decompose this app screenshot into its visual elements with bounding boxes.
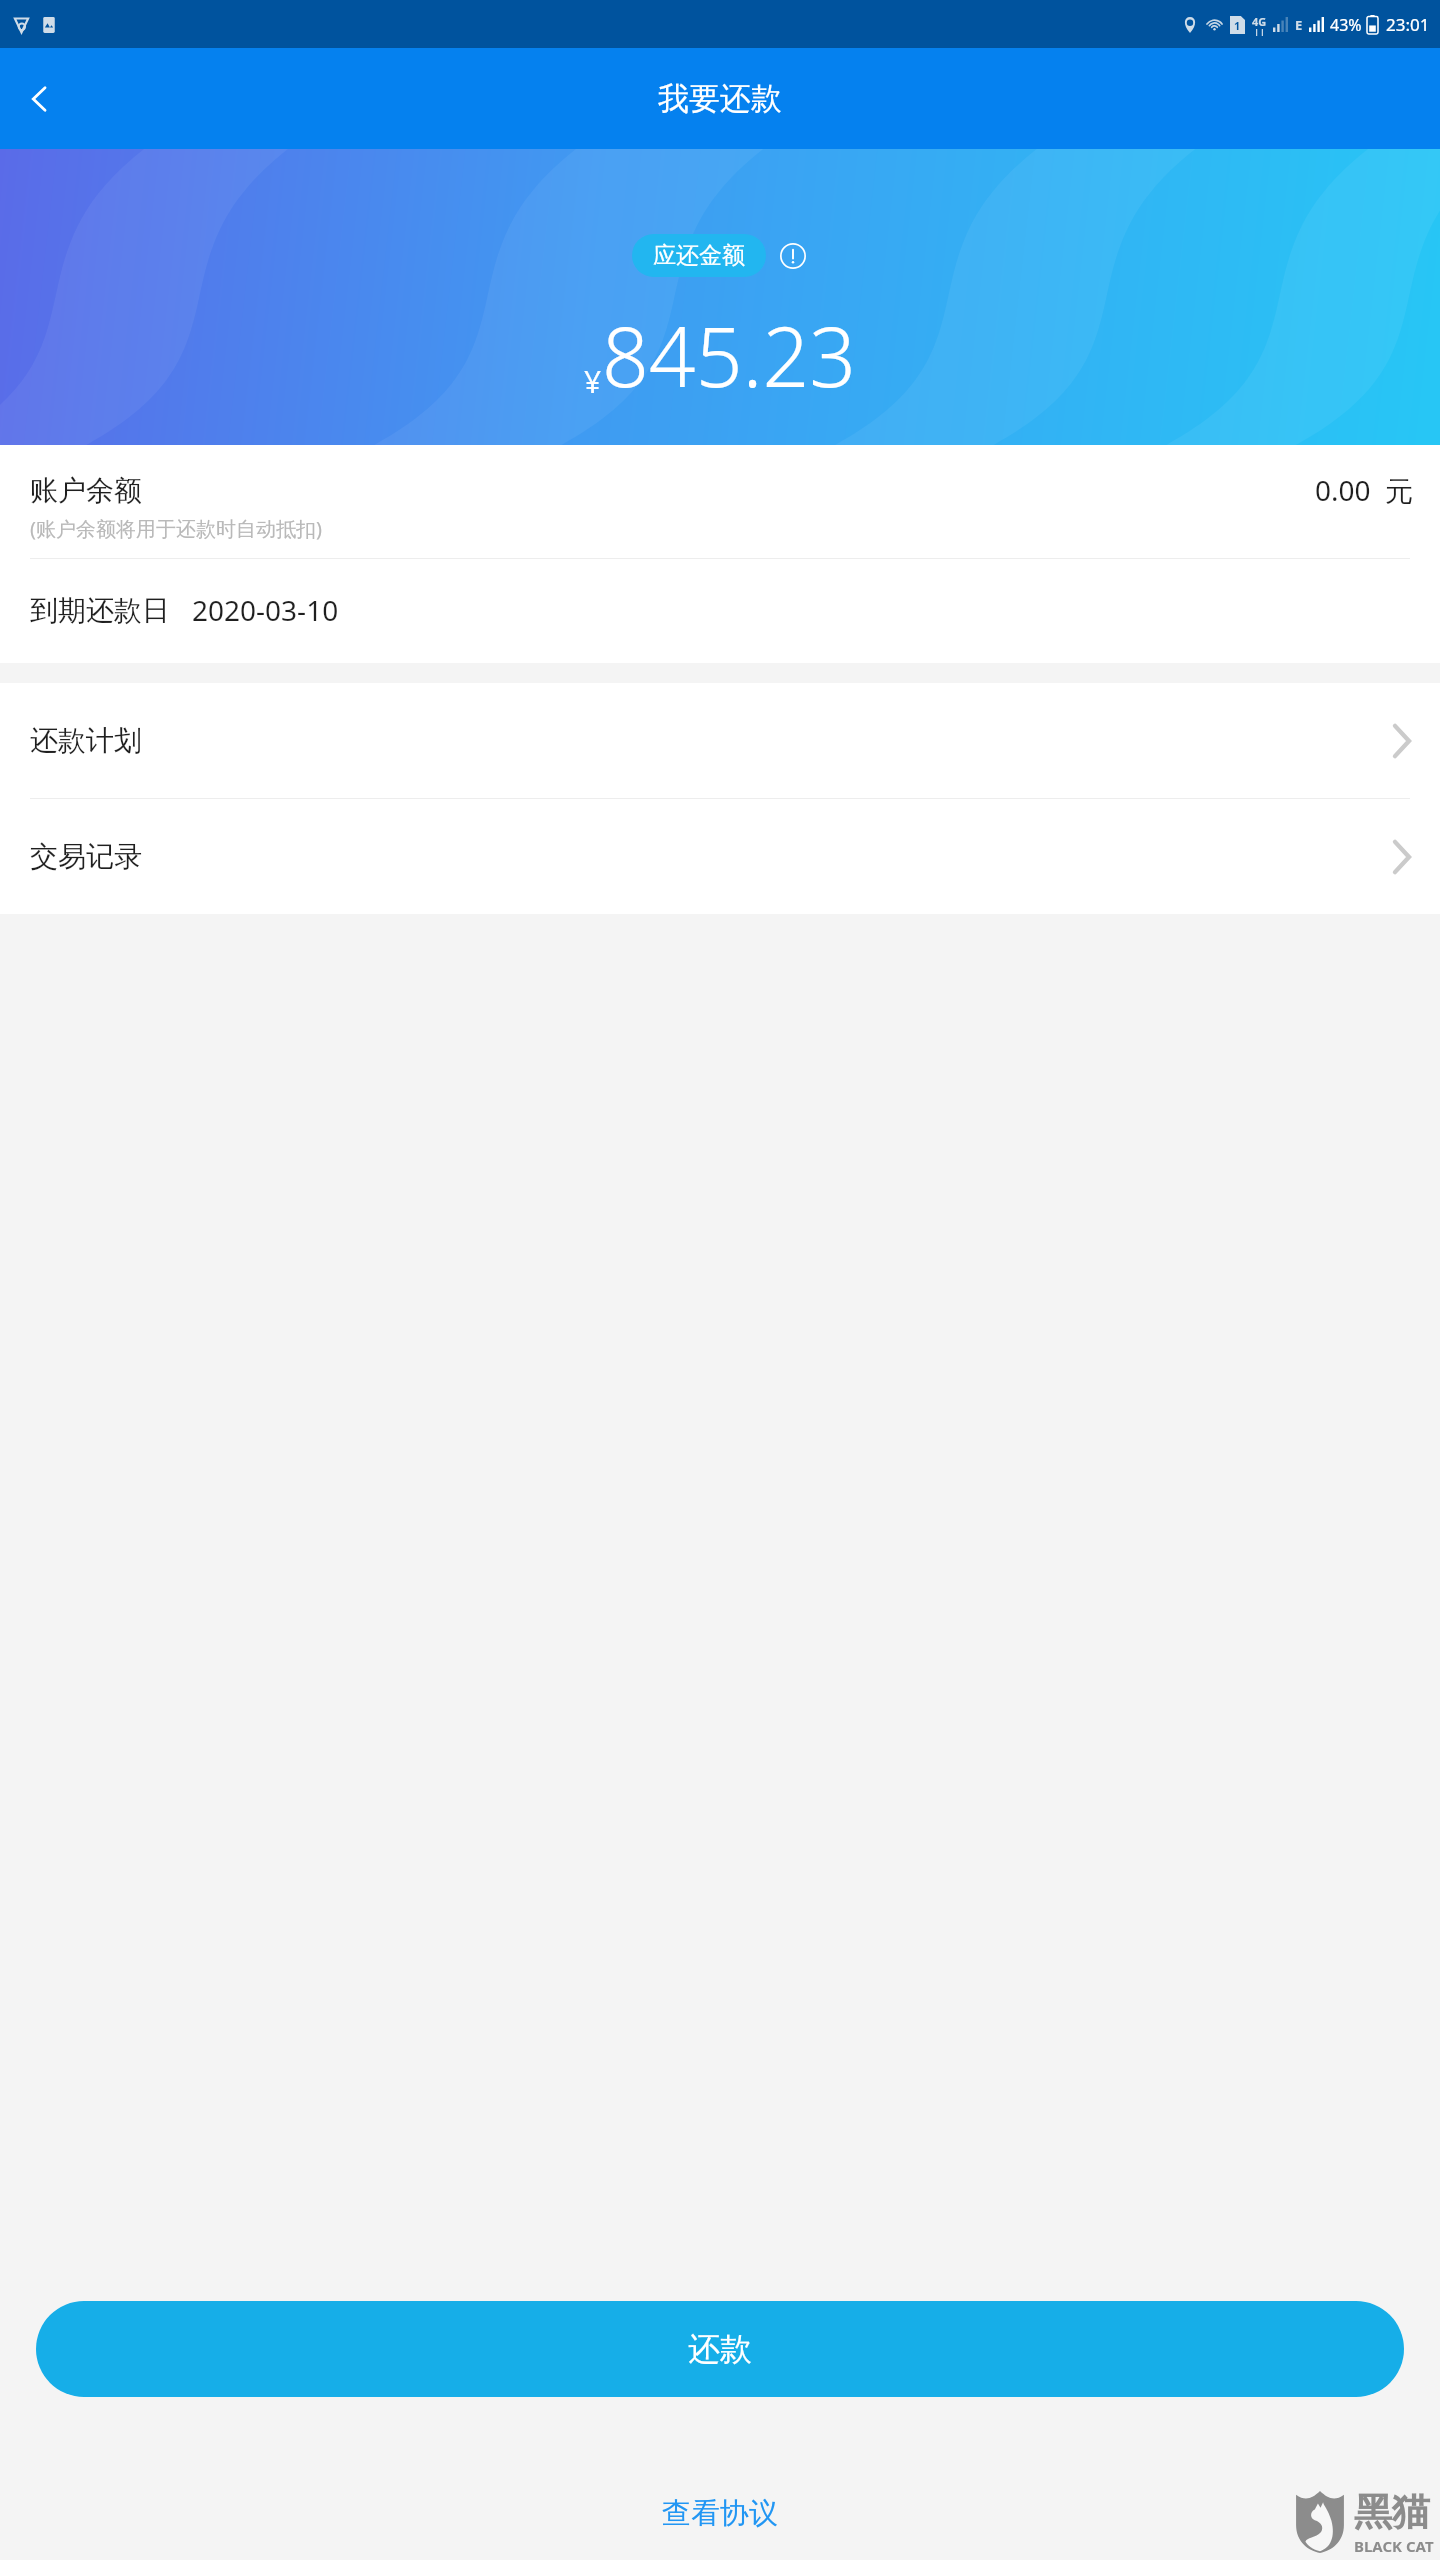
- staticText: E: [1295, 16, 1303, 34]
- staticText: 4G: [1252, 14, 1267, 29]
- staticText: 845.23: [602, 299, 857, 411]
- staticText: 0.00 元: [1315, 471, 1414, 509]
- staticText: BLACK CAT: [1354, 2536, 1434, 2556]
- staticText: ¥: [584, 361, 602, 402]
- staticText: 1: [1234, 18, 1241, 33]
- staticText: 黑猫: [1354, 2488, 1430, 2536]
- button[interactable]: 交易记录: [0, 799, 1440, 914]
- staticText: 应还金额: [653, 241, 745, 270]
- staticText: 还款计划: [30, 723, 142, 758]
- staticText: 23:01: [1386, 13, 1430, 36]
- staticText: (账户余额将用于还款时自动抵扣): [30, 515, 322, 542]
- button[interactable]: 还款计划: [0, 683, 1440, 799]
- staticText: 交易记录: [30, 839, 142, 874]
- button[interactable]: Back: [0, 59, 80, 139]
- staticText: 还款: [688, 2329, 752, 2369]
- button[interactable]: 说明: [778, 241, 808, 271]
- staticText: 2020-03-10: [192, 591, 339, 629]
- staticText: 账户余额: [30, 473, 142, 508]
- button[interactable]: 应还金额: [632, 234, 766, 277]
- staticText: 到期还款日: [30, 593, 170, 628]
- button[interactable]: 还款: [36, 2301, 1404, 2397]
- staticText: 查看协议: [662, 2495, 778, 2532]
- staticText: 43%: [1330, 14, 1362, 36]
- button[interactable]: 查看协议: [642, 2489, 798, 2538]
- staticText: 我要还款: [658, 79, 782, 118]
